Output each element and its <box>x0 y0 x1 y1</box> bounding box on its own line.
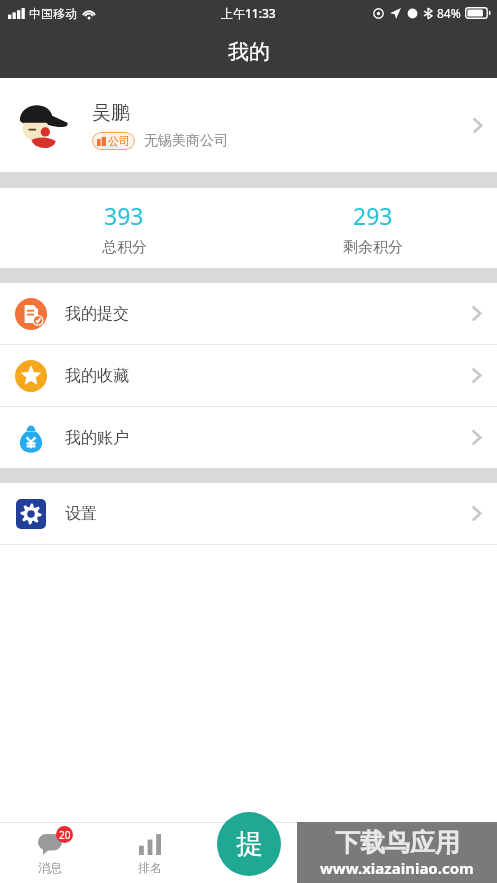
button[interactable]: 提 <box>217 812 281 876</box>
staticText: 上午11:33 <box>221 5 276 21</box>
staticText: 无锡美商公司 <box>144 132 228 150</box>
staticText: 总积分 <box>102 238 147 257</box>
other: Ranking <box>139 833 161 855</box>
other: Messages <box>38 834 62 855</box>
button[interactable]: 我的账户 <box>0 407 497 468</box>
staticText: 20 <box>59 828 71 842</box>
staticText: 下载鸟应用 <box>335 827 460 858</box>
button[interactable]: 393 <box>0 188 248 268</box>
staticText: 剩余积分 <box>343 238 403 257</box>
button[interactable]: Messages <box>0 822 100 883</box>
staticText: 我的提交 <box>65 304 129 324</box>
staticText: 84% <box>437 5 461 21</box>
staticText: 公司 <box>108 134 130 148</box>
button[interactable]: 设置 <box>0 483 497 544</box>
button[interactable]: 吴鹏 <box>0 78 497 172</box>
button[interactable]: 我的收藏 <box>0 345 497 406</box>
staticText: www.xiazainiao.com <box>320 858 474 878</box>
button[interactable]: Ranking <box>100 822 200 883</box>
button[interactable]: 我的提交 <box>0 283 497 344</box>
staticText: 排名 <box>138 860 162 875</box>
staticText: 消息 <box>38 860 62 875</box>
button[interactable]: 293 <box>248 188 497 268</box>
staticText: 293 <box>353 200 393 231</box>
staticText: 393 <box>104 200 144 231</box>
staticText: 我的账户 <box>65 428 129 448</box>
staticText: 提 <box>236 827 263 861</box>
staticText: 设置 <box>65 504 97 524</box>
staticText: 我的 <box>228 39 270 65</box>
staticText: 吴鹏 <box>92 101 130 125</box>
staticText: 中国移动 <box>29 6 77 21</box>
staticText: 我的收藏 <box>65 366 129 386</box>
